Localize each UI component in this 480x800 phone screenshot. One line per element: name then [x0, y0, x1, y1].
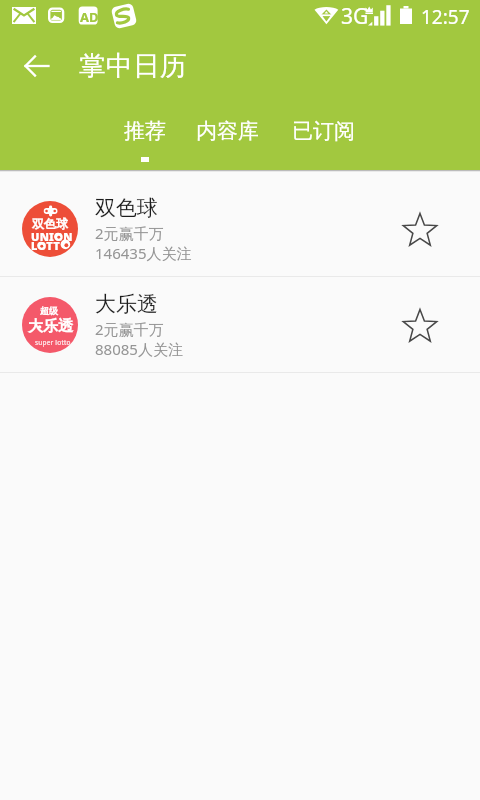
staticText: 推荐: [124, 118, 166, 144]
staticText: 双色球: [95, 195, 158, 221]
staticText: 2元赢千万: [95, 223, 164, 243]
staticText: 88085人关注: [95, 339, 183, 359]
staticText: super lotto: [35, 338, 71, 347]
staticText: AD: [80, 8, 99, 26]
staticText: LOTT: [31, 238, 61, 253]
staticText: 超级: [40, 305, 58, 316]
staticText: 大乐透: [28, 317, 73, 336]
staticText: 3G: [341, 2, 369, 31]
button[interactable]: Favorite: [392, 201, 448, 257]
staticText: 大乐透: [95, 291, 158, 317]
staticText: 已订阅: [292, 118, 355, 144]
staticText: 12:57: [421, 4, 470, 30]
staticText: 掌中日历: [79, 49, 187, 83]
staticText: 内容库: [196, 118, 259, 144]
button[interactable]: 超级: [0, 277, 480, 372]
button[interactable]: 推荐: [111, 110, 178, 166]
button[interactable]: 已订阅: [280, 110, 366, 166]
staticText: UNION: [31, 229, 73, 244]
button[interactable]: Back: [13, 42, 61, 90]
button[interactable]: Favorite: [392, 297, 448, 353]
button[interactable]: 双色球: [0, 170, 480, 276]
staticText: 2元赢千万: [95, 319, 164, 339]
staticText: 双色球: [32, 216, 68, 231]
button[interactable]: 内容库: [183, 110, 271, 166]
staticText: 146435人关注: [95, 243, 192, 263]
